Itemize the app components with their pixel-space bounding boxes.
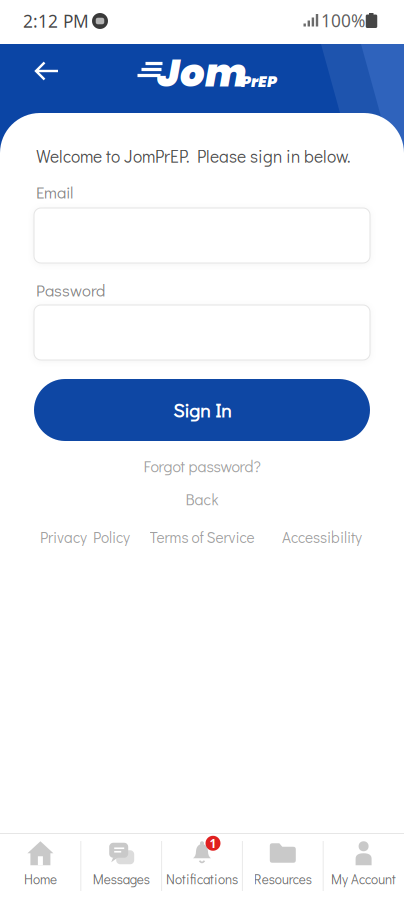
button[interactable]: Back [25,53,69,89]
staticText: 1 [209,835,216,851]
staticText: PrEP [241,71,277,93]
staticText: Password [36,279,105,301]
button[interactable]: Forgot password? [143,455,260,476]
button[interactable]: Privacy Policy [40,527,130,547]
staticText: Messages [93,870,150,888]
staticText: Privacy Policy [40,527,130,547]
staticText: My Account [331,870,396,888]
button[interactable]: Sign [34,379,370,441]
button[interactable]: Accessibility [282,527,362,547]
staticText: Accessibility [282,527,362,547]
staticText: Terms of Service [149,527,254,547]
button[interactable]: Resources [242,833,323,899]
staticText: 100% [321,9,365,32]
button[interactable]: Home [0,833,81,899]
staticText: Jom [157,46,247,100]
button[interactable]: Terms of Service [149,527,254,547]
button[interactable]: My Account [323,833,404,899]
button[interactable]: Messages [81,833,162,899]
staticText: Forgot password? [143,455,260,476]
staticText: Email [36,181,73,203]
staticText: Welcome to JomPrEP. Please sign in below… [36,145,351,167]
staticText: Home [24,870,57,888]
staticText: Resources [254,870,312,888]
button[interactable]: 1 [162,833,242,899]
staticText: Back [185,488,218,509]
staticText: Notifications [166,870,238,888]
staticText: Sign [173,397,210,423]
button[interactable]: Back [185,488,218,509]
staticText: In [215,397,231,423]
staticText: 2:12 PM [23,9,89,32]
